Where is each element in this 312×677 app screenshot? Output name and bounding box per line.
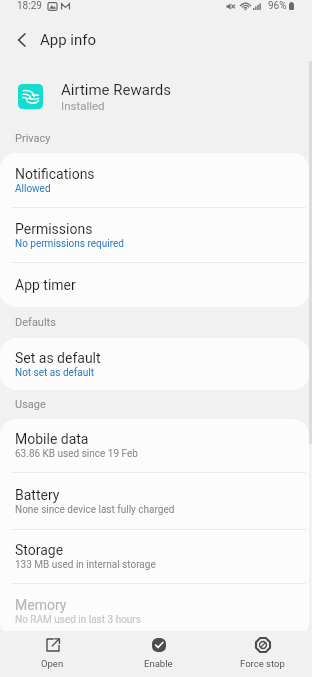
staticText: Notifications [15,166,95,182]
staticText: 18:29 [17,0,42,12]
staticText: Battery [15,487,60,503]
staticText: No permissions required [15,238,124,250]
staticText: Enable [144,658,173,669]
staticText: Permissions [15,221,93,237]
staticText: Airtime Rewards [61,81,172,99]
button[interactable]: Memory [0,584,309,638]
staticText: Not set as default [15,367,94,379]
staticText: 133 MB used in internal storage [15,559,156,571]
staticText: Defaults [15,316,56,329]
staticText: Force stop [240,658,285,669]
staticText: Installed [61,99,105,112]
staticText: Privacy [15,132,51,145]
button[interactable]: Set as default [0,338,309,390]
staticText: Mobile data [15,431,89,447]
staticText: 63.86 KB used since 19 Feb [15,448,138,460]
staticText: App timer [15,277,76,293]
button[interactable]: Mobile data [0,419,309,472]
button[interactable]: Storage [0,530,309,583]
button[interactable]: Open [0,631,105,677]
staticText: None since device last fully charged [15,504,175,516]
button[interactable]: Back [7,25,37,55]
button[interactable]: Enable [106,631,211,677]
button[interactable]: Permissions [0,208,309,262]
staticText: Open [41,658,64,669]
button[interactable]: Notifications [0,153,309,207]
staticText: Memory [15,597,67,613]
staticText: Allowed [15,183,51,195]
staticText: App info [40,31,97,49]
button[interactable]: Force stop [210,631,312,677]
button[interactable]: App timer [0,263,309,307]
button[interactable]: Battery [0,473,309,529]
staticText: Set as default [15,350,101,366]
staticText: No RAM used in last 3 hours [15,614,141,626]
staticText: Usage [15,398,46,411]
staticText: 96% [268,0,287,12]
staticText: Storage [15,542,64,558]
